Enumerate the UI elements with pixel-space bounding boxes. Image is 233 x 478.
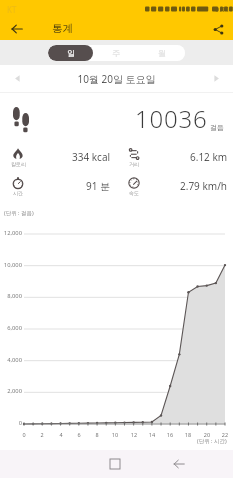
staticText: 거리 bbox=[129, 161, 139, 167]
button[interactable]: Home bbox=[103, 452, 127, 476]
staticText: 16 bbox=[163, 431, 177, 438]
button[interactable]: 속도 bbox=[116, 174, 233, 203]
staticText: 8,000 bbox=[0, 292, 22, 300]
staticText: 6 bbox=[72, 431, 86, 438]
staticText: 12 bbox=[127, 431, 141, 438]
staticText: 12,000 bbox=[0, 229, 22, 237]
staticText: 4,000 bbox=[0, 356, 22, 364]
staticText: 10월 20일 토요일 bbox=[34, 72, 199, 86]
button[interactable]: 거리 bbox=[116, 145, 233, 174]
staticText: 334 kcal bbox=[72, 150, 111, 164]
staticText: 2,000 bbox=[0, 387, 22, 395]
button[interactable]: Back bbox=[167, 452, 191, 476]
staticText: 91 분 bbox=[86, 179, 111, 193]
staticText: 2.79 km/h bbox=[180, 179, 228, 193]
staticText: KT bbox=[7, 4, 17, 15]
staticText: 10036 bbox=[135, 102, 208, 135]
staticText: (단위 : 걸음) bbox=[4, 209, 34, 217]
button[interactable]: 시간 bbox=[0, 174, 116, 203]
staticText: (단위 : 시간) bbox=[197, 437, 227, 445]
staticText: 0 bbox=[17, 431, 31, 438]
staticText: 9:11 bbox=[215, 4, 230, 14]
button[interactable]: 칼로리 bbox=[0, 145, 116, 174]
staticText: 4 bbox=[54, 431, 68, 438]
button[interactable]: Previous day bbox=[0, 65, 34, 92]
staticText: 18 bbox=[181, 431, 195, 438]
staticText: 22 bbox=[218, 431, 232, 438]
staticText: 10,000 bbox=[0, 261, 22, 269]
button[interactable]: 월 bbox=[139, 45, 185, 61]
staticText: 8 bbox=[90, 431, 104, 438]
staticText: 6,000 bbox=[0, 324, 22, 332]
staticText: 0 bbox=[0, 419, 22, 427]
staticText: 6.12 km bbox=[190, 150, 228, 164]
staticText: 통계 bbox=[52, 22, 73, 35]
button[interactable]: 주 bbox=[93, 45, 139, 61]
staticText: 속도 bbox=[129, 190, 139, 196]
staticText: 10 bbox=[108, 431, 122, 438]
staticText: 일 bbox=[67, 48, 75, 58]
staticText: 월 bbox=[158, 48, 166, 58]
button[interactable]: Share bbox=[208, 19, 228, 39]
staticText: 20 bbox=[200, 431, 214, 438]
staticText: 2 bbox=[35, 431, 49, 438]
staticText: 14 bbox=[145, 431, 159, 438]
button[interactable]: 일 bbox=[48, 45, 93, 61]
button[interactable]: Back bbox=[7, 19, 27, 39]
staticText: 걸음 bbox=[210, 123, 224, 132]
staticText: 주 bbox=[112, 48, 120, 58]
staticText: 칼로리 bbox=[11, 161, 26, 167]
staticText: 시간 bbox=[13, 190, 23, 196]
button[interactable]: Next day bbox=[199, 65, 233, 92]
